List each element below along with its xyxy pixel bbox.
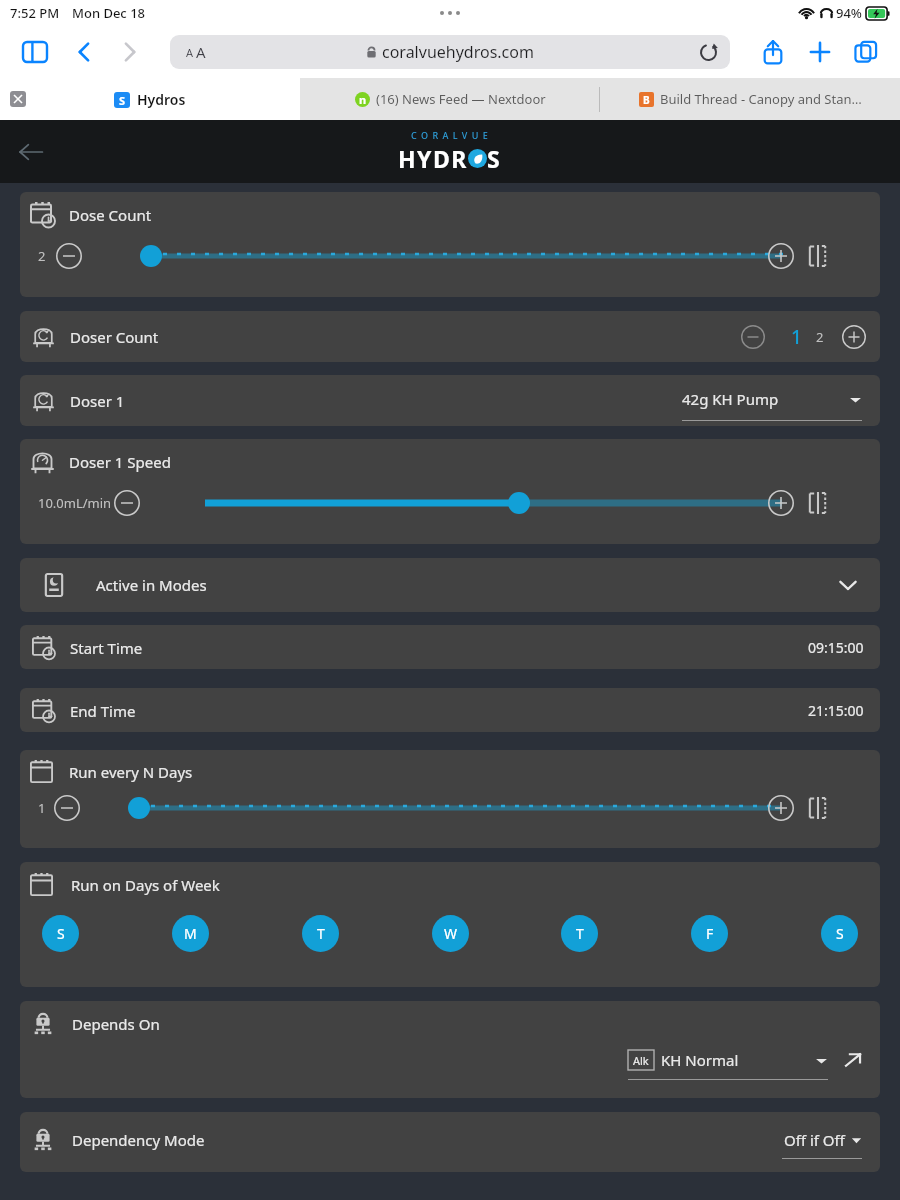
staticText: n [359,92,367,107]
button[interactable]: 2 [816,328,824,346]
button[interactable]: Alk [628,1044,828,1080]
button[interactable]: Expand [838,575,858,595]
staticText: 42g KH Pump [682,389,779,409]
button[interactable]: Increase [768,795,794,821]
staticText: 94% [836,4,862,22]
button[interactable]: Increase [768,243,794,269]
button[interactable]: Back [72,39,98,65]
button[interactable]: Dose Count [20,192,880,297]
staticText: KH Normal [661,1050,739,1070]
button[interactable]: B [600,78,900,120]
button[interactable]: End Time [20,688,880,732]
button[interactable]: Decrease doser count [741,325,765,349]
button[interactable]: Decrease [56,243,82,269]
button[interactable]: Sidebar [22,39,48,65]
staticText: S [57,924,65,943]
button[interactable]: Back [18,139,44,165]
staticText: A [186,45,194,60]
staticText: B [643,93,650,107]
button[interactable]: Slider thumb [508,492,530,514]
staticText: T [317,924,325,943]
staticText: Depends On [72,1014,160,1034]
button[interactable]: Reload [699,43,718,62]
staticText: 1 [38,799,46,817]
button[interactable]: Fine adjust [806,796,830,820]
button[interactable]: Fine adjust [806,491,830,515]
staticText: S [836,924,844,943]
button[interactable]: Doser Count [20,311,880,362]
staticText: Active in Modes [96,575,207,595]
button[interactable]: Increase [768,490,794,516]
button[interactable]: Dependency Mode [20,1112,880,1172]
staticText: S [487,143,502,174]
button[interactable]: S [42,915,79,952]
staticText: Run on Days of Week [71,875,220,895]
staticText: 7:52 PM [10,4,60,22]
button[interactable]: F [691,915,728,952]
button[interactable]: Doser 1 Speed [20,439,880,544]
staticText: 09:15:00 [808,638,864,657]
button[interactable]: Forward [116,39,142,65]
button[interactable]: Run every N Days [20,750,880,848]
button[interactable]: Decrease [114,490,140,516]
button[interactable]: W [432,915,469,952]
button[interactable]: Close tab [0,78,300,120]
button[interactable]: Increase doser count [842,325,866,349]
button[interactable]: 42g KH Pump [682,381,862,421]
staticText: F [706,924,714,943]
staticText: End Time [70,701,136,721]
staticText: Off if Off [784,1130,845,1150]
button[interactable]: A [170,35,730,69]
staticText: (16) News Feed — Nextdoor [376,90,546,108]
staticText: Run every N Days [69,762,193,782]
staticText: T [576,924,584,943]
staticText: Hydros [137,90,186,109]
staticText: 2 [38,247,46,265]
staticText: Dependency Mode [72,1130,205,1150]
staticText: HYDR [398,143,468,174]
button[interactable]: Open [842,1051,864,1069]
button[interactable]: Decrease [54,795,80,821]
button[interactable]: Depends On [20,1001,880,1098]
button[interactable]: Off if Off [752,1125,862,1159]
button[interactable]: New tab [808,40,832,64]
button[interactable]: Run on Days of Week [20,862,880,987]
button[interactable]: Share [760,39,786,65]
button[interactable]: Close tab [10,91,26,107]
staticText: W [444,924,458,943]
button[interactable]: M [172,915,209,952]
button[interactable]: 1 [791,324,802,350]
staticText: C O R A L V U E [411,129,489,141]
staticText: S [119,93,126,108]
button[interactable]: Active in Modes [20,558,880,612]
staticText: Dose Count [69,205,152,225]
button[interactable]: Slider thumb [128,797,150,819]
staticText: M [184,924,197,943]
staticText: 21:15:00 [808,701,864,720]
staticText: Alk [633,1053,649,1068]
button[interactable]: Slider thumb [140,245,162,267]
button[interactable]: Doser 1 [20,375,880,426]
staticText: Doser Count [70,327,159,347]
staticText: A [196,42,206,62]
staticText: Doser 1 Speed [69,452,171,472]
button[interactable]: Tabs [854,40,878,64]
button[interactable]: T [561,915,598,952]
button[interactable]: Start Time [20,625,880,669]
staticText: Start Time [70,638,143,658]
button[interactable]: Fine adjust [806,244,830,268]
staticText: 10.0mL/min [38,494,112,512]
staticText: Mon Dec 18 [72,4,146,22]
button[interactable]: n [300,78,600,120]
staticText: coralvuehydros.com [382,41,534,63]
button[interactable]: S [821,915,858,952]
staticText: Doser 1 [70,391,125,411]
staticText: Build Thread - Canopy and Stan… [660,90,862,108]
button[interactable]: T [302,915,339,952]
